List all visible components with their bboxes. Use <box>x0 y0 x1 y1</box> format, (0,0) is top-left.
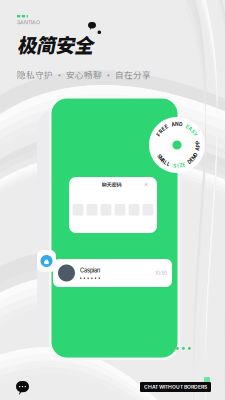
staticText: L <box>164 160 167 166</box>
staticText: S <box>158 153 161 159</box>
staticText: Z <box>179 163 182 168</box>
staticText: 聊天密码 <box>102 181 122 188</box>
staticText: M <box>159 156 163 162</box>
staticText: SANTIAO <box>17 19 40 26</box>
staticText: A <box>196 146 200 152</box>
staticText: E <box>182 162 185 168</box>
staticText: O <box>194 152 198 158</box>
staticText: S <box>173 163 176 169</box>
button[interactable]: Caspian <box>53 259 172 287</box>
staticText: F <box>157 132 160 137</box>
staticText: D <box>179 121 182 127</box>
staticText: Y <box>193 132 197 137</box>
staticText: ✕ <box>144 182 148 187</box>
staticText: E <box>190 157 193 163</box>
staticText: D <box>188 159 191 165</box>
button[interactable]: Close <box>143 181 150 188</box>
staticText: E <box>186 124 189 130</box>
staticText: S <box>192 129 195 134</box>
staticText: L <box>167 161 170 167</box>
staticText <box>196 149 197 155</box>
staticText: A <box>161 158 165 164</box>
staticText: 极简安全 <box>17 30 93 58</box>
staticText: I <box>177 163 178 169</box>
staticText: P <box>196 143 199 149</box>
staticText: Caspian <box>80 267 100 274</box>
button[interactable]: Chat <box>16 381 29 395</box>
staticText: M <box>192 154 196 160</box>
staticText: A <box>171 121 175 127</box>
staticText: CHAT WITHOUT BORDERS <box>144 384 207 390</box>
staticText: 隐私守护 · 安心畅聊 · 自在分享 <box>17 68 151 81</box>
staticText: N <box>175 121 179 127</box>
staticText: R <box>159 129 162 134</box>
staticText: E <box>162 126 165 132</box>
staticText: P <box>196 140 199 145</box>
staticText: E <box>165 124 168 130</box>
staticText: 10:30 <box>155 270 167 276</box>
staticText: A <box>188 126 192 132</box>
